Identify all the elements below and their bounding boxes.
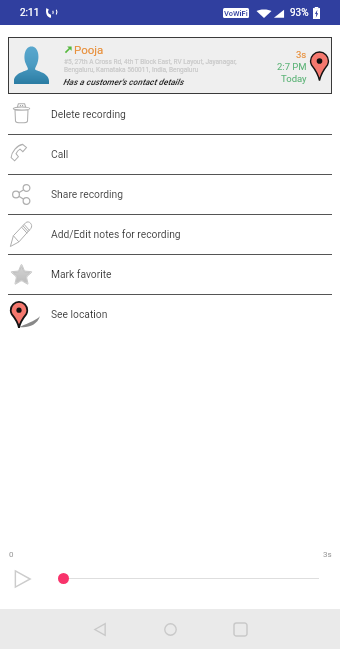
staticText: 0 [9, 550, 14, 559]
button[interactable]: Call [0, 134, 340, 174]
button[interactable]: Play [8, 567, 36, 591]
button[interactable]: Mark favorite [0, 254, 340, 294]
button[interactable]: Recents [205, 609, 275, 649]
staticText: 3s [323, 550, 332, 559]
staticText: See location [51, 308, 108, 320]
staticText: Pooja [74, 43, 104, 56]
staticText: Mark favorite [51, 268, 112, 280]
staticText: Add/Edit notes for recording [51, 228, 181, 240]
staticText: 93% [290, 7, 309, 19]
button[interactable]: Share recording [0, 174, 340, 214]
staticText: 2:11 [20, 7, 40, 19]
staticText: 2:7 PM [277, 61, 307, 72]
staticText: VoWiFi [224, 9, 248, 18]
staticText: Delete recording [51, 108, 126, 120]
button[interactable]: See location [0, 294, 340, 334]
staticText: #5, 27th A Cross Rd, 4th T Block East, R… [64, 58, 237, 66]
staticText: Bengaluru, Karnataka 560011, India, Beng… [64, 66, 199, 74]
button[interactable]: Delete recording [0, 94, 340, 134]
button[interactable]: Add/Edit notes for recording [0, 214, 340, 254]
staticText: Has a customer's contact details [63, 77, 184, 87]
staticText: Today [281, 73, 307, 84]
staticText: 3s [296, 49, 307, 60]
button[interactable]: Pooja [8, 37, 332, 94]
staticText: Share recording [51, 188, 124, 200]
staticText: Call [51, 148, 69, 160]
button[interactable]: Home [135, 609, 205, 649]
button[interactable]: Back [65, 609, 135, 649]
